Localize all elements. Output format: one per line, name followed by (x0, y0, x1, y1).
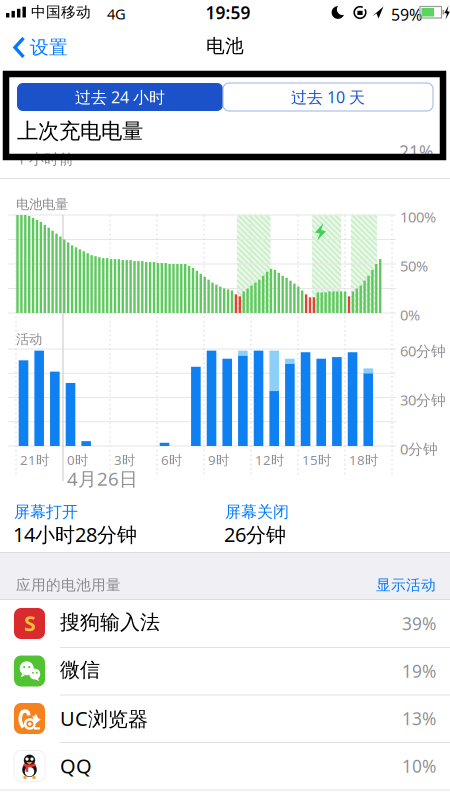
staticText: 0% (400, 305, 420, 324)
button[interactable]: UC浏览器 (0, 695, 450, 742)
staticText: 4月26日 (67, 466, 138, 491)
staticText: 13% (402, 707, 436, 730)
staticText: 1 小时前 (17, 149, 74, 168)
staticText: 0时 (67, 451, 88, 469)
button[interactable]: 显示活动 (336, 576, 436, 594)
button[interactable]: 过去 24 小时 (17, 83, 223, 111)
button[interactable]: QQ (0, 742, 450, 789)
button[interactable]: 过去 10 天 (223, 83, 433, 111)
button[interactable]: S (0, 600, 450, 647)
staticText: 活动 (16, 331, 42, 347)
staticText: 30分钟 (400, 390, 446, 409)
staticText: 12时 (255, 451, 284, 469)
staticText: 搜狗输入法 (60, 610, 160, 635)
staticText: 19% (402, 659, 436, 682)
staticText: 18时 (349, 451, 378, 469)
staticText: 26分钟 (224, 521, 286, 548)
button[interactable]: 微信 (0, 647, 450, 694)
staticText: 过去 10 天 (291, 86, 365, 108)
staticText: QQ (60, 752, 92, 779)
staticText: 21时 (20, 451, 49, 469)
staticText: 6时 (161, 451, 182, 469)
staticText: 上次充电电量 (17, 118, 143, 144)
staticText: 过去 24 小时 (75, 86, 165, 108)
staticText: 9时 (208, 451, 229, 469)
staticText: 中国移动 (31, 3, 91, 21)
staticText: 0分钟 (400, 439, 438, 458)
staticText: 屏幕关闭 (225, 502, 289, 522)
staticText: S (24, 609, 36, 637)
staticText: 19:59 (205, 1, 250, 24)
staticText: 设置 (30, 36, 68, 59)
staticText: 电池电量 (16, 196, 68, 212)
staticText: 应用的电池用量 (16, 576, 121, 594)
staticText: 60分钟 (400, 341, 446, 360)
staticText: 59% (391, 4, 422, 25)
staticText: 14小时28分钟 (13, 521, 137, 548)
staticText: 4G (107, 4, 126, 23)
staticText: 显示活动 (376, 576, 436, 594)
staticText: 10% (402, 754, 436, 777)
staticText: 电池 (206, 34, 244, 57)
staticText: 39% (402, 612, 436, 635)
staticText: UC浏览器 (60, 705, 148, 732)
staticText: 屏幕打开 (14, 502, 78, 522)
staticText: 微信 (60, 657, 100, 682)
staticText: 3时 (114, 451, 135, 469)
staticText: 15时 (302, 451, 331, 469)
staticText: 21% (399, 140, 433, 163)
button[interactable]: 设置 (13, 36, 68, 59)
staticText: 50% (400, 256, 428, 275)
staticText: 100% (400, 207, 436, 226)
